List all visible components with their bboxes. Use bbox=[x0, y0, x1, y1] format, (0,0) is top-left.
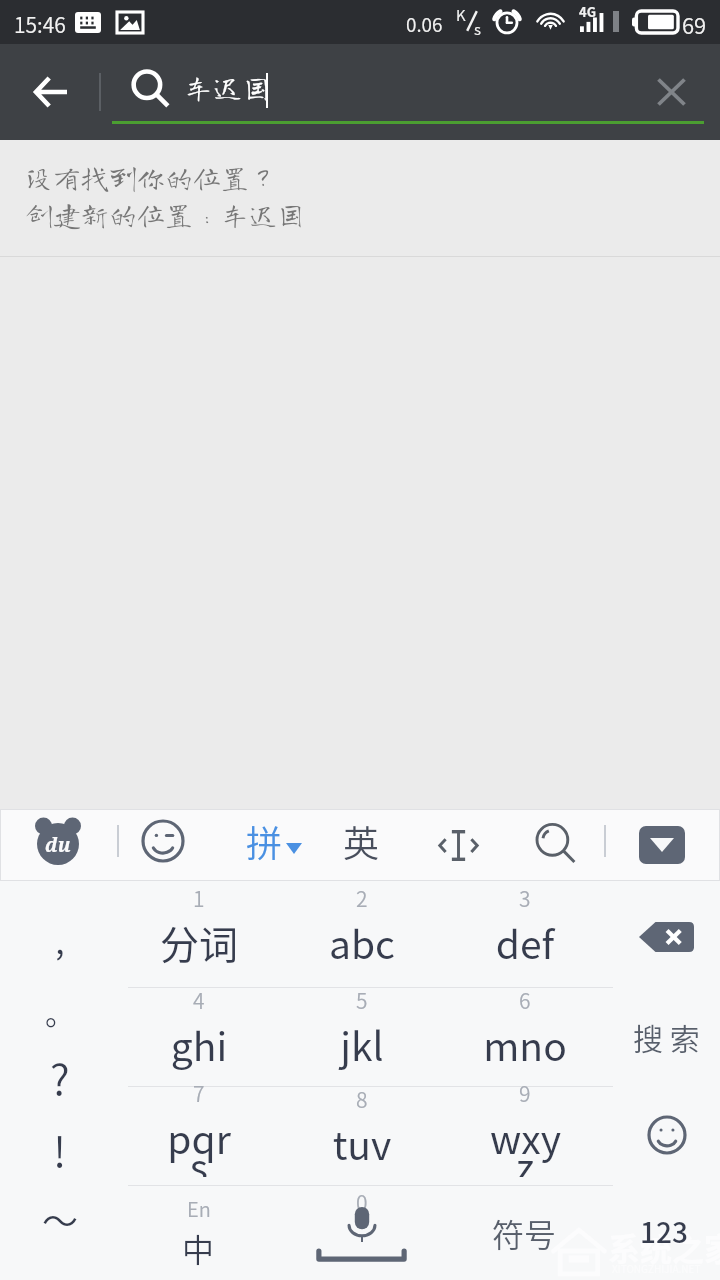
button[interactable]: ～ bbox=[0, 1181, 120, 1257]
staticText: mno bbox=[460, 1016, 590, 1072]
button[interactable]: Baidu input method bbox=[33, 816, 83, 866]
button[interactable]: Backspace bbox=[613, 892, 720, 982]
staticText: 英 bbox=[343, 815, 380, 867]
staticText: 2 bbox=[356, 883, 368, 913]
staticText: 拼 bbox=[246, 815, 283, 867]
staticText: 123 bbox=[640, 1211, 688, 1252]
button[interactable]: Search bbox=[536, 823, 576, 865]
button[interactable]: Hide keyboard bbox=[639, 826, 685, 864]
staticText: 没有找到你的位置？ bbox=[25, 163, 278, 191]
button[interactable]: 搜 索 bbox=[613, 991, 720, 1081]
button[interactable]: ? bbox=[0, 1038, 120, 1114]
staticText: 创建新的位置：车迟国 bbox=[25, 200, 306, 228]
staticText: 系统之家 bbox=[608, 1224, 720, 1270]
button[interactable]: 4 bbox=[117, 987, 280, 1086]
staticText: 7 bbox=[193, 1078, 205, 1108]
button[interactable]: 拼 bbox=[238, 814, 310, 868]
staticText: 15:46 bbox=[14, 9, 66, 39]
staticText: 8 bbox=[356, 1084, 368, 1114]
staticText: 分词 bbox=[134, 914, 264, 970]
button[interactable]: Move cursor bbox=[428, 818, 488, 872]
staticText: 4 bbox=[193, 985, 205, 1015]
button[interactable]: En bbox=[117, 1185, 280, 1280]
button[interactable]: 。 bbox=[0, 973, 120, 1049]
staticText: 。 bbox=[45, 990, 75, 1033]
button[interactable]: Emoji bbox=[141, 819, 185, 863]
staticText: 符号 bbox=[492, 1210, 557, 1256]
staticText: 搜 索 bbox=[633, 1015, 700, 1058]
staticText: 6 bbox=[519, 985, 531, 1015]
button[interactable]: 3 bbox=[443, 881, 606, 987]
staticText: wxyz bbox=[487, 1109, 563, 1177]
staticText: 中 bbox=[182, 1225, 215, 1271]
staticText: K bbox=[456, 4, 466, 26]
staticText: s bbox=[474, 18, 481, 40]
button[interactable]: ! bbox=[0, 1110, 120, 1186]
staticText: 车迟国 bbox=[184, 72, 272, 101]
staticText: du bbox=[45, 832, 71, 858]
button[interactable]: 6 bbox=[443, 987, 606, 1086]
staticText: def bbox=[460, 914, 590, 970]
button[interactable]: 123 bbox=[613, 1186, 720, 1276]
other: Voice input bbox=[280, 1185, 443, 1280]
staticText: tuv bbox=[297, 1115, 427, 1171]
button[interactable]: 7 bbox=[117, 1086, 280, 1185]
button[interactable]: 符号 bbox=[443, 1185, 606, 1280]
staticText: 69 bbox=[682, 8, 707, 40]
staticText: pqrs bbox=[161, 1109, 237, 1177]
staticText: 4G bbox=[579, 2, 596, 21]
button[interactable]: 2 bbox=[280, 881, 443, 987]
button[interactable]: , bbox=[0, 900, 120, 976]
staticText: 9 bbox=[519, 1078, 531, 1108]
staticText: 0 bbox=[356, 1187, 368, 1217]
button[interactable]: 1 bbox=[117, 881, 280, 987]
button[interactable]: 5 bbox=[280, 987, 443, 1086]
staticText: 3 bbox=[519, 883, 531, 913]
staticText: , bbox=[55, 912, 65, 964]
staticText: ? bbox=[50, 1046, 70, 1107]
staticText: abc bbox=[297, 914, 427, 970]
staticText: En bbox=[187, 1194, 211, 1223]
staticText: 1 bbox=[193, 883, 205, 913]
button[interactable]: Emoji bbox=[613, 1090, 720, 1180]
button[interactable]: Voice input bbox=[280, 1185, 443, 1280]
staticText: ghi bbox=[134, 1016, 264, 1072]
button[interactable]: 9 bbox=[443, 1086, 606, 1185]
button[interactable]: Back bbox=[4, 44, 96, 140]
button[interactable]: 8 bbox=[280, 1086, 443, 1185]
button[interactable]: 没有找到你的位置？ bbox=[0, 140, 720, 257]
staticText: 0.06 bbox=[406, 10, 443, 38]
button[interactable]: Clear search bbox=[623, 44, 720, 140]
staticText: jkl bbox=[297, 1016, 427, 1072]
button[interactable]: 英 bbox=[337, 814, 385, 868]
staticText: 5 bbox=[356, 985, 368, 1015]
staticText: ! bbox=[53, 1118, 67, 1179]
staticText: ～ bbox=[42, 1193, 79, 1245]
